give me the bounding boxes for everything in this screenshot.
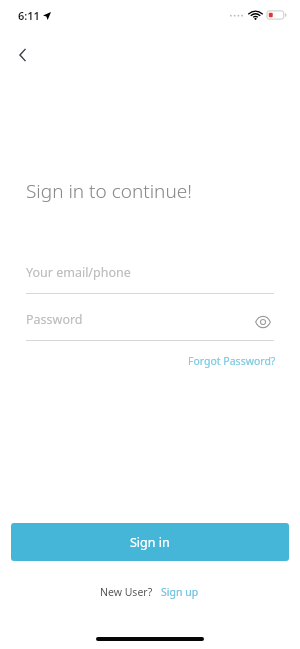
button[interactable]: Password [26,311,274,341]
staticText: Your email/phone [26,264,131,281]
button[interactable]: Sign in [11,523,289,561]
button[interactable]: Your email/phone [26,264,274,294]
staticText: Sign in to continue! [26,178,192,204]
staticText: Password [26,311,83,328]
button[interactable]: Forgot Password? [186,352,278,370]
button[interactable]: Show password [252,311,274,333]
staticText: Sign in [130,534,170,551]
staticText: 6:11 [18,8,40,23]
staticText: Sign up [161,585,199,599]
staticText: Forgot Password? [188,354,276,368]
staticText: New User? [100,585,153,599]
button[interactable]: Sign up [159,583,201,601]
button[interactable]: Back [6,38,40,72]
